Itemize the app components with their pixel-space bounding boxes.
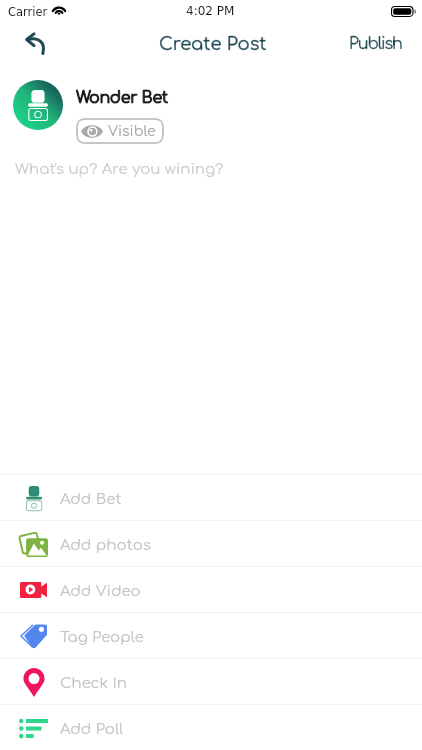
staticText: Create Post	[159, 34, 267, 54]
staticText: What's up? Are you wining?	[15, 161, 224, 178]
staticText: Create Post	[159, 34, 267, 54]
staticText: Publish	[349, 35, 402, 53]
staticText: Wonder Bet	[76, 89, 168, 107]
staticText: Visible	[108, 124, 156, 140]
button[interactable]: Add Video	[0, 567, 422, 612]
button[interactable]: Visible	[76, 118, 164, 144]
staticText: Tag People	[60, 629, 144, 646]
button[interactable]: Add Bet	[0, 475, 422, 520]
button[interactable]: Profile avatar	[13, 80, 63, 130]
staticText: Publish	[349, 35, 402, 53]
button[interactable]: Check In	[0, 659, 422, 704]
staticText: Add Poll	[60, 721, 124, 738]
button[interactable]: Back	[11, 22, 57, 68]
staticText: Wonder Bet	[76, 89, 168, 107]
button[interactable]: Add Poll	[0, 705, 422, 750]
button[interactable]: Tag People	[0, 613, 422, 658]
staticText: 4:02 PM	[186, 4, 235, 18]
staticText: Add photos	[60, 537, 152, 554]
button[interactable]: Add photos	[0, 521, 422, 566]
staticText: Add Bet	[60, 491, 122, 508]
staticText: Carrier	[8, 5, 48, 18]
button[interactable]: Publish	[349, 36, 422, 54]
staticText: Check In	[60, 675, 127, 692]
staticText: Add Video	[60, 583, 141, 600]
